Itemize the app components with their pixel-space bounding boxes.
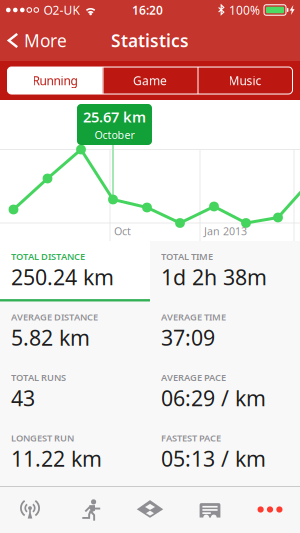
staticText: O2-UK bbox=[44, 2, 80, 18]
staticText: 100% bbox=[229, 2, 260, 18]
staticText: Game bbox=[133, 72, 167, 88]
staticText: Statistics bbox=[111, 29, 189, 52]
staticText: October bbox=[94, 128, 134, 142]
staticText: Oct bbox=[114, 224, 131, 238]
button[interactable]: TOTAL RUNS bbox=[0, 362, 150, 422]
button[interactable]: Music bbox=[197, 67, 292, 94]
staticText: Jan 2013 bbox=[204, 224, 247, 238]
button[interactable]: Running bbox=[7, 67, 102, 94]
staticText: TOTAL TIME bbox=[161, 250, 213, 263]
button[interactable]: Routes bbox=[120, 486, 180, 533]
button[interactable]: Game bbox=[102, 67, 197, 94]
staticText: 43 bbox=[11, 384, 35, 412]
button[interactable]: More bbox=[240, 486, 300, 533]
staticText: Music bbox=[228, 72, 261, 88]
staticText: 1d 2h 38m bbox=[161, 263, 267, 291]
staticText: Running bbox=[32, 72, 77, 88]
button[interactable]: TOTAL TIME bbox=[150, 241, 300, 301]
button[interactable]: FASTEST PACE bbox=[150, 422, 300, 483]
button[interactable]: Live bbox=[0, 486, 60, 533]
staticText: LONGEST RUN bbox=[11, 432, 74, 444]
staticText: AVERAGE DISTANCE bbox=[11, 311, 98, 323]
staticText: 37:09 bbox=[161, 323, 215, 352]
staticText: TOTAL DISTANCE bbox=[11, 250, 85, 263]
button[interactable]: News bbox=[180, 486, 240, 533]
staticText: 11.22 km bbox=[11, 444, 102, 473]
button[interactable]: AVERAGE PACE bbox=[150, 362, 300, 422]
staticText: 06:29 / km bbox=[161, 384, 266, 412]
button[interactable]: AVERAGE TIME bbox=[150, 301, 300, 362]
staticText: FASTEST PACE bbox=[161, 432, 221, 444]
staticText: 16:20 bbox=[132, 2, 163, 18]
button[interactable]: LONGEST RUN bbox=[0, 422, 150, 483]
staticText: AVERAGE PACE bbox=[161, 371, 226, 384]
staticText: More bbox=[24, 29, 67, 52]
staticText: 5.82 km bbox=[11, 323, 90, 352]
button[interactable]: TOTAL DISTANCE bbox=[0, 241, 150, 301]
button[interactable]: AVERAGE DISTANCE bbox=[0, 301, 150, 362]
staticText: 250.24 km bbox=[11, 263, 114, 291]
staticText: AVERAGE TIME bbox=[161, 311, 226, 323]
staticText: 25.67 km bbox=[83, 107, 146, 127]
button[interactable]: More bbox=[0, 20, 75, 61]
staticText: 05:13 / km bbox=[161, 444, 266, 473]
staticText: TOTAL RUNS bbox=[11, 371, 66, 384]
button[interactable]: Run bbox=[60, 486, 120, 533]
